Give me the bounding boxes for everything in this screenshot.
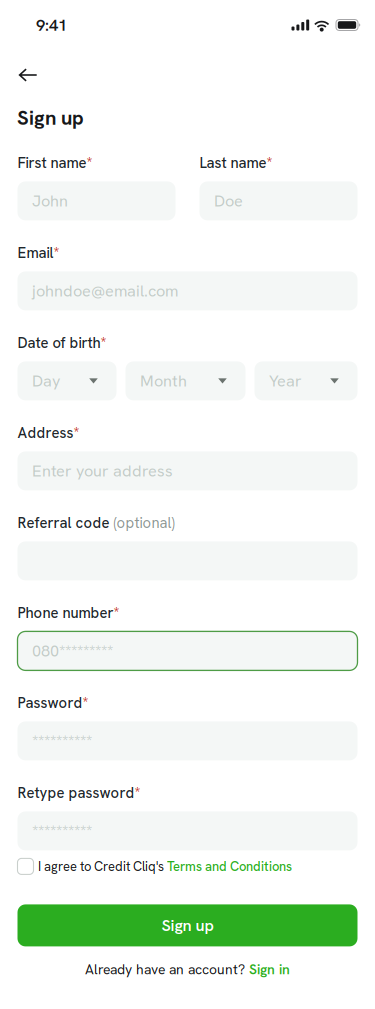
staticText: Enter your address bbox=[32, 460, 173, 481]
staticText: I agree to Credit Cliq's bbox=[38, 858, 167, 875]
staticText: Already have an account? bbox=[85, 960, 249, 978]
staticText: Date of birth bbox=[17, 333, 100, 353]
staticText: First name bbox=[17, 153, 86, 173]
staticText: * bbox=[73, 423, 79, 443]
staticText: ********** bbox=[32, 730, 92, 751]
staticText: * bbox=[53, 243, 59, 263]
staticText: Referral code bbox=[17, 513, 109, 533]
staticText: Phone number bbox=[17, 603, 113, 623]
staticText: * bbox=[113, 603, 119, 623]
staticText: Email bbox=[17, 243, 53, 263]
staticText: ********** bbox=[32, 820, 92, 841]
staticText: Month bbox=[140, 370, 187, 391]
staticText: * bbox=[100, 333, 106, 353]
staticText: * bbox=[134, 783, 140, 803]
staticText: johndoe@email.com bbox=[32, 280, 178, 301]
staticText: Address bbox=[17, 423, 73, 443]
staticText: 080********* bbox=[32, 640, 113, 661]
staticText: (optional) bbox=[109, 513, 174, 533]
staticText: Retype password bbox=[17, 783, 134, 803]
button[interactable]: Sign up bbox=[0, 904, 375, 946]
staticText: * bbox=[82, 693, 88, 713]
staticText: Terms and Conditions bbox=[167, 858, 292, 875]
button[interactable]: I agree to Credit Cliq's bbox=[0, 857, 375, 875]
staticText: Sign up bbox=[17, 104, 84, 131]
staticText: Sign up bbox=[161, 915, 213, 936]
staticText: John bbox=[32, 190, 68, 211]
staticText: Sign in bbox=[249, 960, 290, 978]
button[interactable]: Back bbox=[0, 59, 64, 91]
staticText: 9:41 bbox=[36, 14, 67, 36]
staticText: * bbox=[266, 153, 272, 173]
staticText: Doe bbox=[214, 190, 243, 211]
staticText: Password bbox=[17, 693, 82, 713]
staticText: Day bbox=[32, 370, 60, 391]
staticText: Last name bbox=[199, 153, 266, 173]
staticText: * bbox=[86, 153, 92, 173]
button[interactable]: Already have an account? bbox=[0, 959, 375, 979]
staticText: Year bbox=[269, 370, 302, 391]
